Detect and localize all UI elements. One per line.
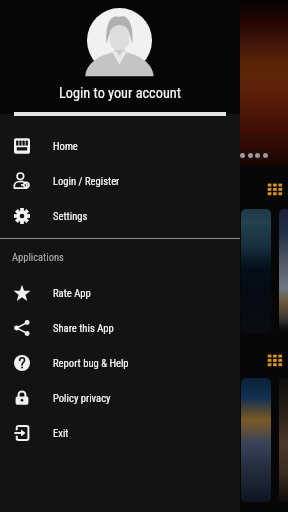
- staticText: Share this App: [53, 322, 114, 334]
- button[interactable]: Share this App: [0, 310, 240, 345]
- button[interactable]: Report bug & Help: [0, 345, 240, 380]
- staticText: Rate App: [53, 287, 91, 299]
- staticText: Policy privacy: [53, 392, 111, 404]
- button[interactable]: Home: [0, 128, 240, 163]
- button[interactable]: Policy privacy: [0, 380, 240, 415]
- other: Home: [14, 138, 30, 154]
- staticText: Home: [53, 140, 78, 152]
- button[interactable]: View all: [267, 354, 283, 367]
- button[interactable]: Exit: [0, 415, 240, 450]
- staticText: Report bug & Help: [53, 357, 129, 369]
- button[interactable]: View all: [267, 183, 283, 196]
- other: Login / Register: [14, 173, 30, 189]
- staticText: Login to your account: [59, 85, 181, 102]
- button[interactable]: Movie poster: [241, 378, 271, 502]
- staticText: Login / Register: [53, 175, 120, 187]
- other: Rate App: [14, 285, 30, 301]
- other: Report bug & Help: [14, 355, 30, 371]
- button[interactable]: Rate App: [0, 275, 240, 310]
- button[interactable]: Movie poster: [279, 209, 288, 333]
- staticText: Applications: [12, 251, 64, 263]
- button[interactable]: Settings: [0, 198, 240, 233]
- other: Policy privacy: [14, 390, 30, 406]
- staticText: Settings: [53, 210, 88, 222]
- other: Exit: [14, 425, 30, 441]
- other: Settings: [14, 208, 30, 224]
- button[interactable]: Movie poster: [241, 209, 271, 333]
- staticText: Exit: [53, 427, 69, 439]
- other: Share this App: [14, 320, 30, 336]
- button[interactable]: Login / Register: [0, 163, 240, 198]
- button[interactable]: Movie poster: [279, 378, 288, 502]
